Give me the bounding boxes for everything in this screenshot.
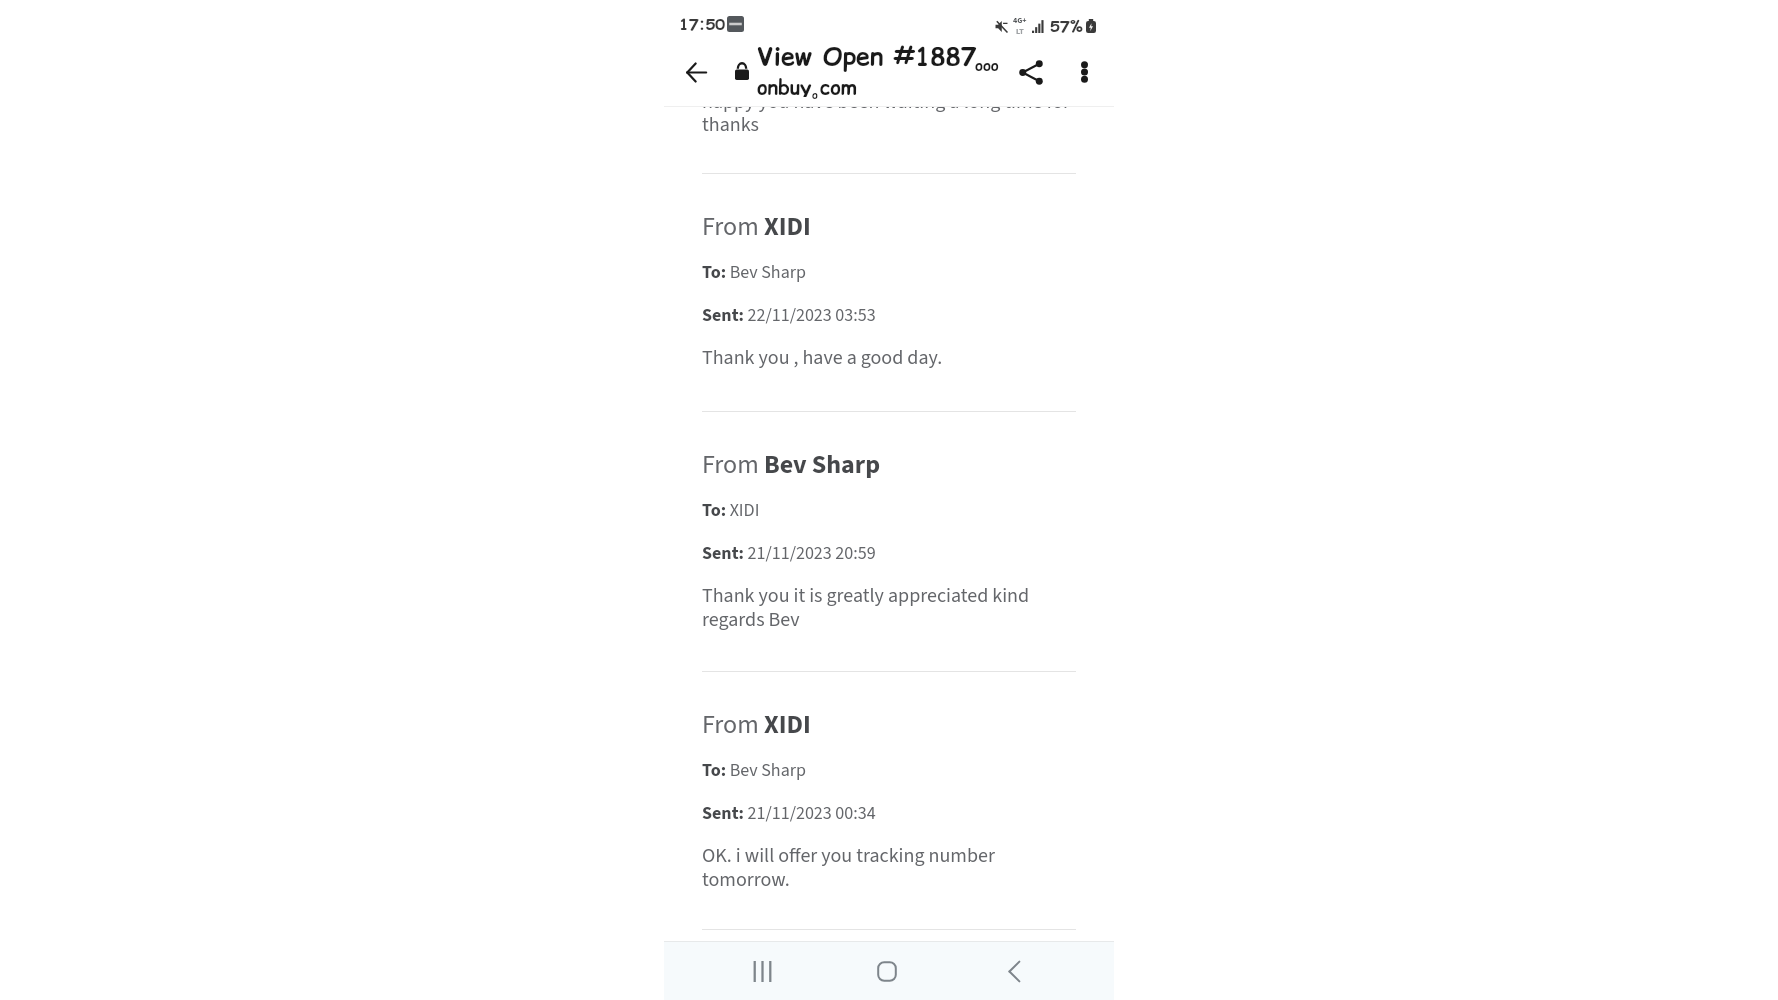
staticText: Sent: 22/11/2023 03:53 xyxy=(702,303,876,329)
staticText: Thank you it is greatly appreciated kind… xyxy=(702,582,1076,634)
staticText: 4G+ xyxy=(1013,15,1027,26)
staticText: o xyxy=(812,87,818,102)
staticText: thanks xyxy=(702,111,759,139)
staticText: onbuy com xyxy=(757,74,857,97)
staticText: LT xyxy=(1016,26,1024,37)
staticText: Sent: 21/11/2023 20:59 xyxy=(702,541,876,567)
staticText: To: Bev Sharp xyxy=(702,260,806,286)
button[interactable]: View Open #1887 xyxy=(726,42,994,100)
staticText: ooo xyxy=(975,55,999,76)
staticText: Sent: 21/11/2023 00:34 xyxy=(702,801,876,827)
staticText: Thank you , have a good day. xyxy=(702,344,943,372)
staticText: 57% xyxy=(1050,15,1083,37)
button[interactable]: Home xyxy=(857,942,917,1000)
button[interactable]: Back xyxy=(984,942,1044,1000)
staticText: View Open #1887 xyxy=(757,39,977,74)
button[interactable]: Recents xyxy=(732,942,792,1000)
staticText: To: Bev Sharp xyxy=(702,758,806,784)
staticText: From XIDI xyxy=(702,208,811,245)
staticText: From XIDI xyxy=(702,706,811,743)
staticText: From Bev Sharp xyxy=(702,446,881,483)
staticText: OK. i will offer you tracking number tom… xyxy=(702,842,1076,894)
button[interactable]: Back xyxy=(674,50,718,94)
button[interactable]: More options xyxy=(1062,50,1106,94)
staticText: 17:50 xyxy=(679,13,725,35)
staticText: To: XIDI xyxy=(702,498,760,524)
staticText: happy you have been waiting a long time … xyxy=(702,88,1076,116)
button[interactable]: Share xyxy=(1009,50,1053,94)
